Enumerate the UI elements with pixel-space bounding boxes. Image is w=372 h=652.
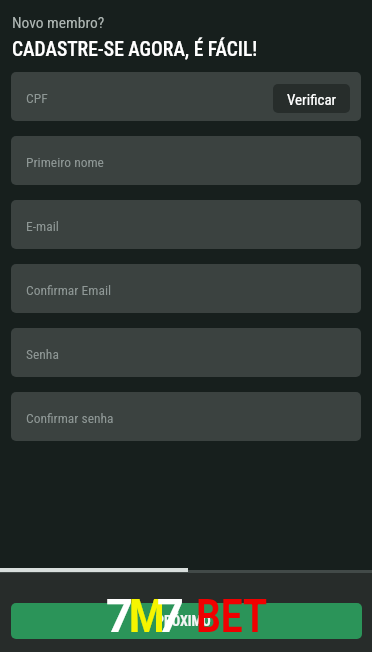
staticText: Confirmar senha [26, 410, 114, 426]
staticText: CADASTRE-SE AGORA, É FÁCIL! [12, 38, 258, 61]
staticText: Novo membro? [12, 14, 105, 32]
button[interactable]: Confirmar senha [11, 392, 361, 441]
staticText: E-mail [26, 218, 59, 234]
other: 7M7 BET [0, 0, 85, 54]
staticText: Senha [26, 346, 59, 362]
button[interactable]: Senha [11, 328, 361, 377]
staticText: CPF [26, 90, 48, 106]
button[interactable]: Verificar [273, 84, 350, 113]
staticText: 7 [157, 589, 184, 643]
staticText: Verificar [287, 91, 337, 109]
button[interactable]: CPF [11, 72, 361, 121]
button[interactable]: Primeiro nome [11, 136, 361, 185]
button[interactable]: Confirmar Email [11, 264, 361, 313]
staticText: BET [196, 589, 268, 643]
staticText: 7 [106, 589, 133, 643]
button[interactable]: PRÓXIMO [11, 603, 362, 639]
staticText: M [129, 589, 165, 643]
staticText: Primeiro nome [26, 154, 104, 170]
staticText: Confirmar Email [26, 282, 112, 298]
button[interactable]: E-mail [11, 200, 361, 249]
staticText: PRÓXIMO [156, 613, 211, 629]
